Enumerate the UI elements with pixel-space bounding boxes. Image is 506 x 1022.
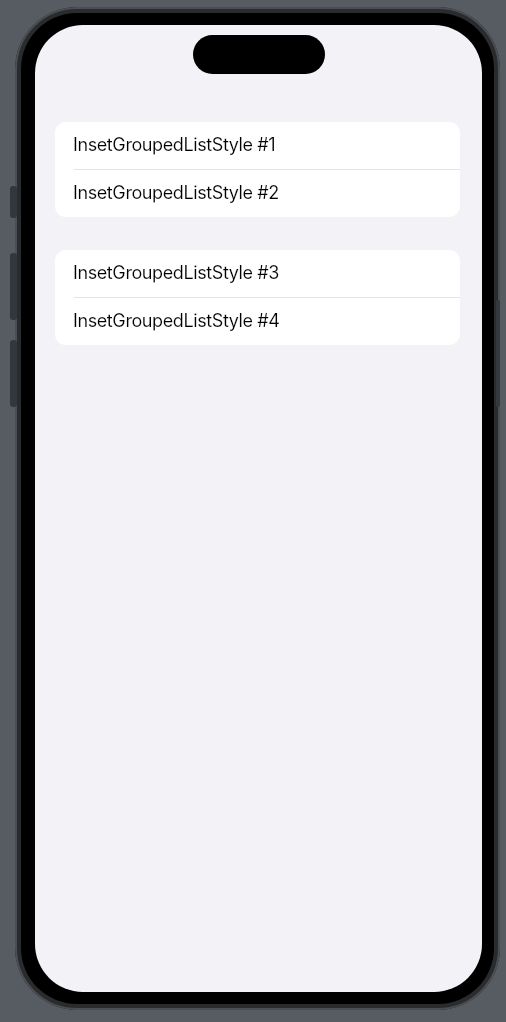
staticText: InsetGroupedListStyle #1	[73, 134, 276, 156]
button[interactable]: InsetGroupedListStyle #4	[55, 298, 460, 345]
staticText: InsetGroupedListStyle #4	[73, 310, 280, 332]
button[interactable]: InsetGroupedListStyle #3	[55, 250, 460, 297]
button[interactable]: InsetGroupedListStyle #2	[55, 170, 460, 217]
staticText: InsetGroupedListStyle #2	[73, 182, 279, 204]
button[interactable]: InsetGroupedListStyle #1	[55, 122, 460, 169]
staticText: InsetGroupedListStyle #3	[73, 262, 279, 284]
